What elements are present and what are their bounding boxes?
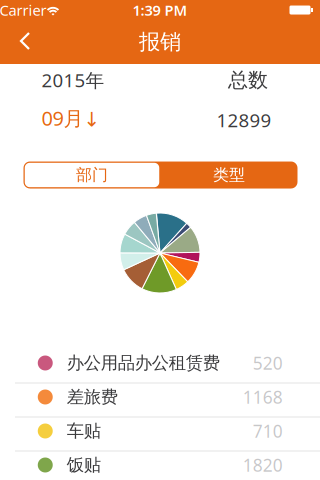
button[interactable]: 类型 xyxy=(160,161,297,188)
staticText: 1:39 PM xyxy=(132,0,187,20)
staticText: 饭贴 xyxy=(67,454,101,476)
staticText: 办公用品办公租赁费 xyxy=(67,352,220,374)
staticText: 总数 xyxy=(228,68,268,92)
staticText: 2015年 xyxy=(41,68,104,92)
staticText: 710 xyxy=(253,419,283,442)
staticText: 类型 xyxy=(213,165,245,185)
staticText: 520 xyxy=(253,351,283,374)
button[interactable]: 车贴 xyxy=(0,414,320,448)
button[interactable]: 部门 xyxy=(23,161,160,188)
staticText: 09月↓ xyxy=(41,105,100,131)
button[interactable]: 09月↓ xyxy=(41,105,100,131)
staticText: 1820 xyxy=(243,453,283,476)
button[interactable]: Back xyxy=(0,20,44,64)
staticText: 报销 xyxy=(139,29,181,55)
staticText: 部门 xyxy=(76,165,108,185)
button[interactable]: 饭贴 xyxy=(0,448,320,480)
staticText: Carrier xyxy=(0,0,46,20)
button[interactable]: 办公用品办公租赁费 xyxy=(0,346,320,380)
staticText: 差旅费 xyxy=(67,386,118,408)
staticText: 车贴 xyxy=(67,420,101,442)
staticText: 1168 xyxy=(243,385,283,408)
button[interactable]: 差旅费 xyxy=(0,380,320,414)
staticText: 12899 xyxy=(216,108,271,132)
